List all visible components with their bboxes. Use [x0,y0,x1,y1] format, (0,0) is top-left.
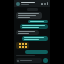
button[interactable] [16,12,42,19]
button[interactable]: More options [47,2,48,5]
button[interactable] [22,36,48,41]
button[interactable] [16,30,39,35]
button[interactable] [20,24,48,29]
button[interactable] [28,20,48,23]
button[interactable] [25,50,48,54]
button[interactable]: Photo attachment [16,42,29,49]
other: Contact avatar [16,2,20,6]
button[interactable]: Video call [41,3,43,5]
button[interactable]: Send message [43,58,48,63]
button[interactable]: Emoji [16,58,42,63]
button[interactable]: Contact avatar [14,0,50,7]
